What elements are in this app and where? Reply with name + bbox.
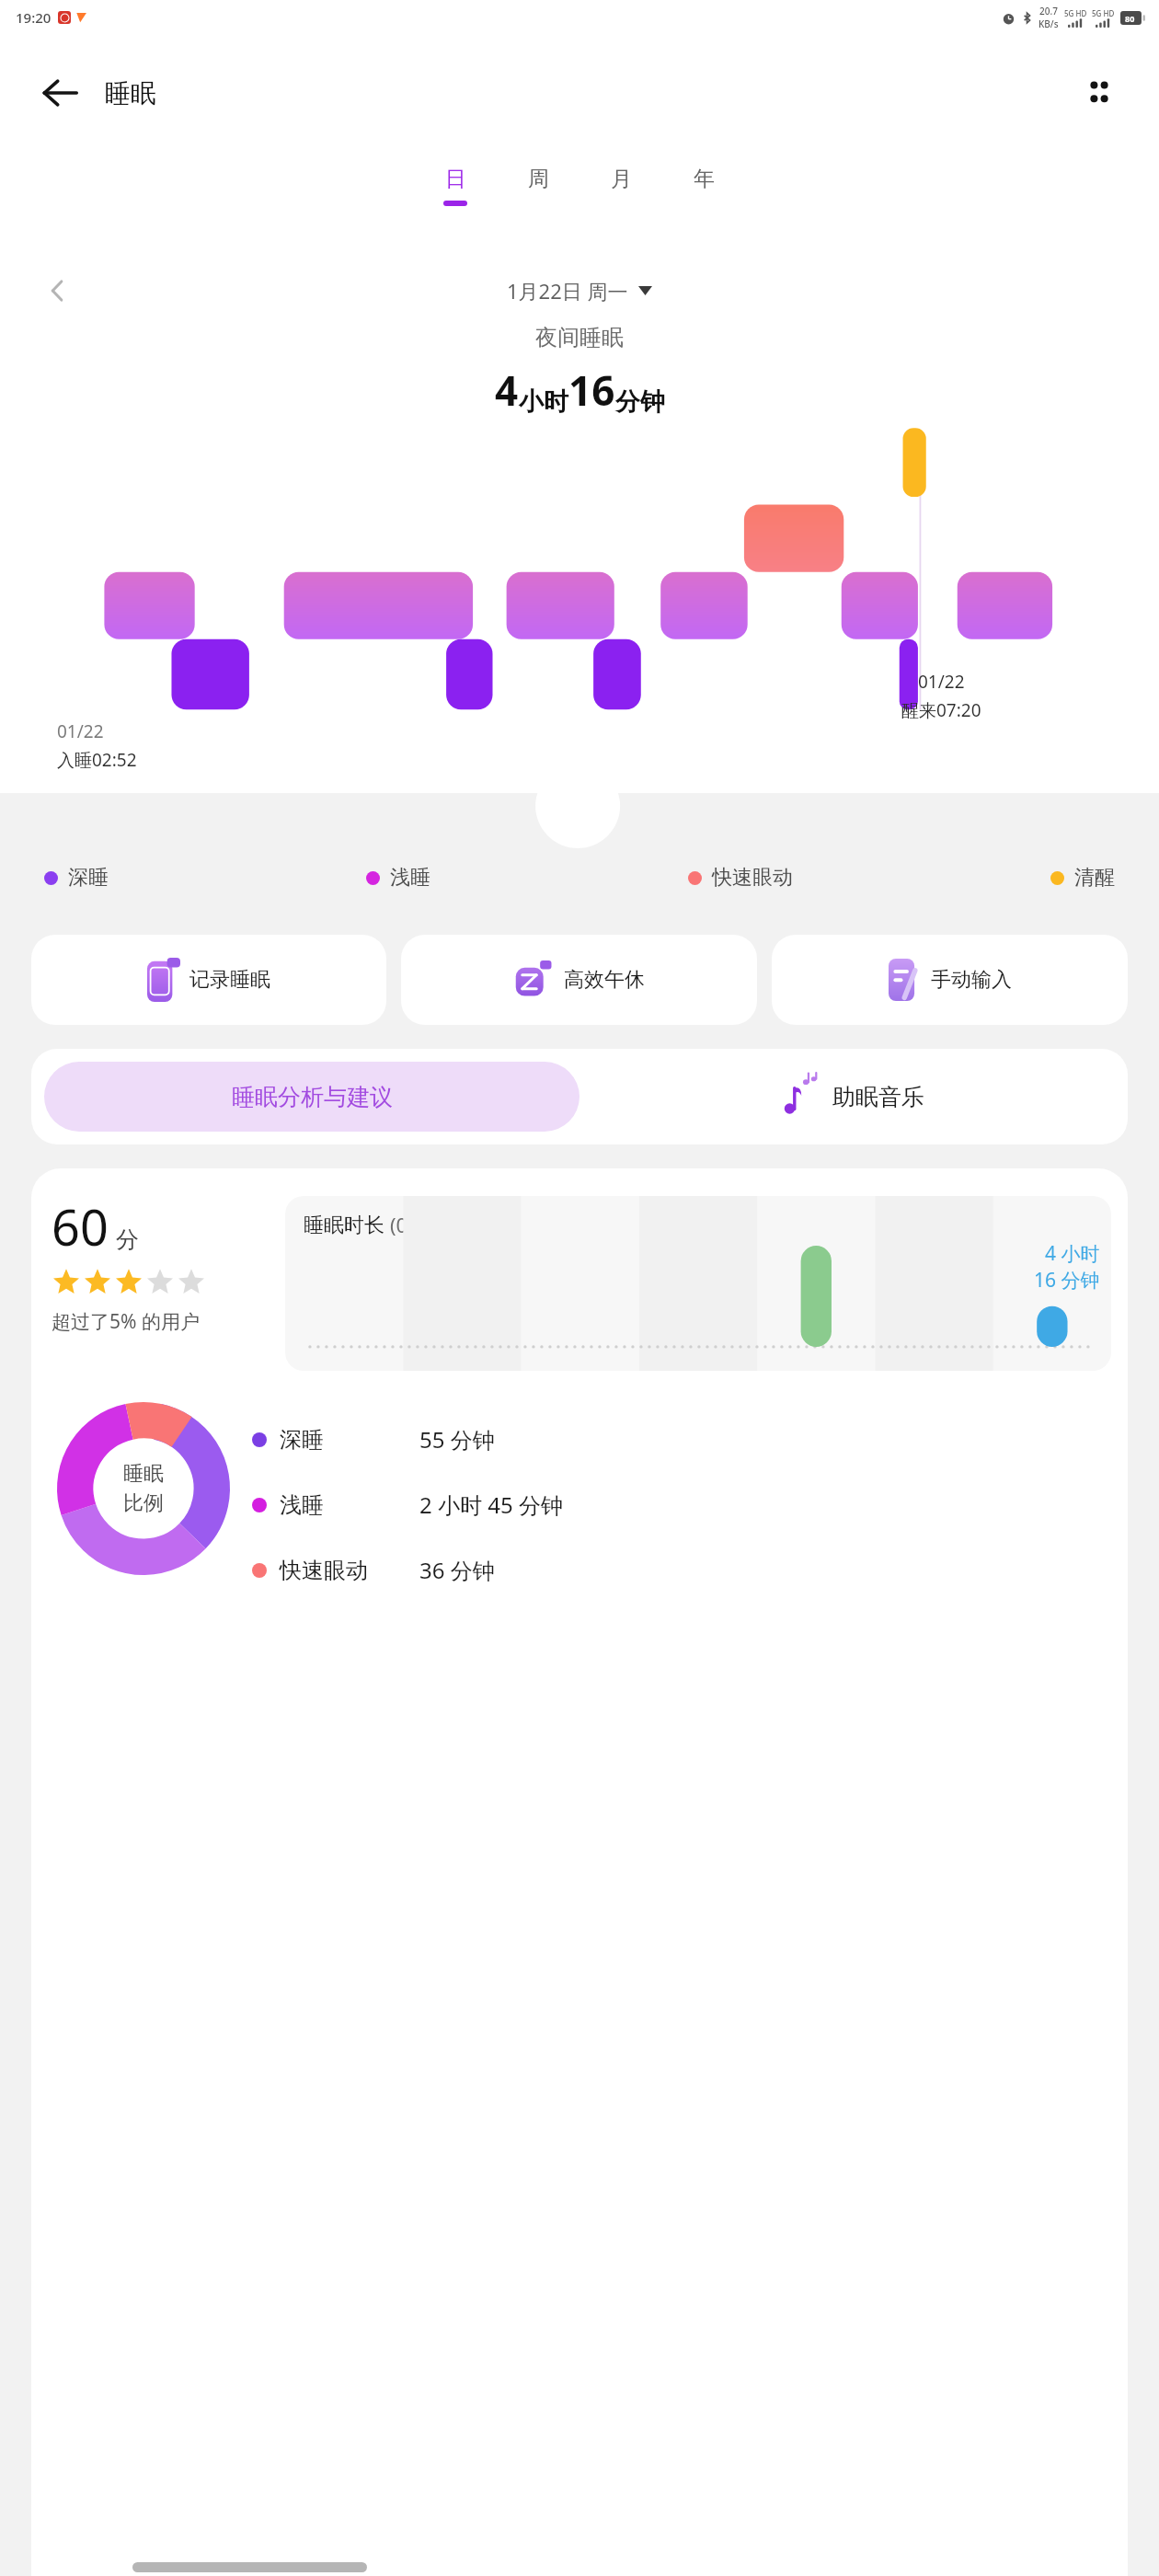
staticText: 01/22 [918, 670, 965, 694]
staticText: (01/16-01/22) [390, 1211, 517, 1238]
button[interactable]: Previous day [35, 268, 81, 314]
staticText: 高效午休 [564, 967, 645, 993]
staticText: 36 分钟 [419, 1555, 495, 1585]
staticText: 2 小时 45 分钟 [419, 1489, 563, 1520]
staticText: 20.7 [1039, 5, 1058, 17]
staticText: 周 [528, 166, 549, 192]
button[interactable]: 周 [511, 166, 565, 206]
button[interactable]: 日 [429, 166, 482, 206]
staticText: 入睡02:52 [57, 748, 137, 772]
staticText: 睡眠分析与建议 [232, 1083, 393, 1111]
staticText: 比例 [123, 1490, 164, 1516]
staticText: 快速眼动 [712, 865, 793, 891]
button[interactable]: More options [1071, 64, 1128, 121]
button[interactable]: 月 [594, 166, 648, 206]
staticText: 4 [495, 362, 519, 418]
staticText: 1月22日 周一 [507, 277, 628, 305]
staticText: 60 [52, 1192, 109, 1260]
staticText: 快速眼动 [280, 1557, 368, 1584]
staticText: 超过了5% 的用户 [52, 1308, 200, 1335]
staticText: 清醒 [1074, 865, 1115, 891]
staticText: 月 [611, 166, 632, 192]
button[interactable]: 1月22日 周一 [507, 277, 652, 305]
staticText: 记录睡眠 [189, 967, 270, 993]
button[interactable]: 手动输入 [772, 935, 1128, 1025]
button[interactable]: Back [31, 64, 88, 121]
staticText: 深睡 [280, 1426, 324, 1454]
staticText: 16 分钟 [1034, 1267, 1100, 1294]
staticText: 01/22 [57, 719, 104, 743]
staticText: 夜间睡眠 [535, 324, 624, 351]
button[interactable]: 睡眠分析与建议 [44, 1062, 579, 1132]
staticText: 手动输入 [931, 967, 1012, 993]
staticText: 深睡 [68, 865, 109, 891]
staticText: 55 分钟 [419, 1424, 495, 1455]
staticText: 睡眠 [123, 1461, 164, 1487]
staticText: 4 小时 [1045, 1240, 1100, 1267]
staticText: 浅睡 [280, 1491, 324, 1519]
staticText: 醒来07:20 [901, 698, 981, 722]
staticText: 80 [1125, 13, 1135, 24]
button[interactable]: 高效午休 [401, 935, 757, 1025]
button[interactable]: 记录睡眠 [31, 935, 386, 1025]
staticText: 睡眠时长 [304, 1213, 384, 1238]
staticText: 5G HD [1064, 8, 1087, 18]
staticText: 年 [694, 166, 715, 192]
staticText: 小时 [519, 386, 568, 418]
staticText: KB/s [1039, 17, 1059, 30]
staticText: 分 [116, 1225, 139, 1254]
staticText: 助眠音乐 [832, 1083, 924, 1111]
button[interactable]: 助眠音乐 [579, 1049, 1128, 1144]
button[interactable]: 年 [677, 166, 730, 206]
staticText: 日 [445, 166, 466, 192]
staticText: 分钟 [615, 386, 665, 418]
staticText: 19:20 [16, 8, 52, 27]
staticText: 睡眠 [105, 77, 156, 109]
staticText: 5G HD [1092, 8, 1115, 18]
staticText: 16 [568, 362, 615, 418]
staticText: 浅睡 [390, 865, 430, 891]
